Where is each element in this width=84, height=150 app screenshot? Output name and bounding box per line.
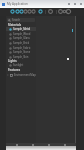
- staticText: Features: [8, 68, 21, 72]
- button[interactable]: Toolbar action: [66, 9, 71, 14]
- staticText: Sample_Wood: [13, 32, 31, 36]
- staticText: Materials: [8, 23, 22, 27]
- staticText: Lights: [8, 59, 17, 63]
- button[interactable]: Search: [7, 18, 35, 22]
- button[interactable]: Sample_Fabric: [6, 46, 36, 50]
- button[interactable]: Close: [78, 0, 84, 8]
- button[interactable]: Maximize: [72, 0, 78, 8]
- button[interactable]: Sunlight: [6, 63, 36, 67]
- button[interactable]: Sample_Brick: [6, 41, 36, 45]
- button[interactable]: Toolbar action: [10, 9, 15, 14]
- button[interactable]: Toolbar action: [23, 9, 28, 14]
- staticText: Sunlight: [13, 63, 24, 67]
- button[interactable]: Sample_Metal: [6, 27, 36, 31]
- staticText: Sample_Brick: [13, 41, 30, 45]
- button[interactable]: Toolbar action: [38, 9, 43, 14]
- button[interactable]: Environment Map: [6, 73, 36, 77]
- button[interactable]: Toolbar action: [62, 9, 67, 14]
- button[interactable]: Toolbar action: [48, 9, 53, 14]
- staticText: Sample_Stone: [13, 50, 31, 54]
- button[interactable]: Sample_Wood: [6, 32, 36, 36]
- staticText: Sample_Fabric: [13, 46, 31, 50]
- button[interactable]: Minimize: [66, 0, 72, 8]
- button[interactable]: Toolbar action: [15, 9, 20, 14]
- staticText: Sample_Metal: [13, 27, 31, 31]
- button[interactable]: Toolbar action: [58, 9, 63, 14]
- button[interactable]: Sample_Stone: [6, 50, 36, 54]
- button[interactable]: Toolbar action: [31, 9, 36, 14]
- staticText: Search: [12, 18, 21, 22]
- button[interactable]: Toolbar action: [19, 9, 24, 14]
- staticText: Sample_Glass: [13, 36, 30, 40]
- staticText: Sample_Skin: [13, 55, 29, 59]
- button[interactable]: Toolbar action: [27, 9, 32, 14]
- staticText: Environment Map: [14, 73, 36, 77]
- button[interactable]: Sample_Glass: [6, 36, 36, 40]
- staticText: My Application: [7, 2, 28, 6]
- button[interactable]: Sample_Skin: [6, 55, 36, 59]
